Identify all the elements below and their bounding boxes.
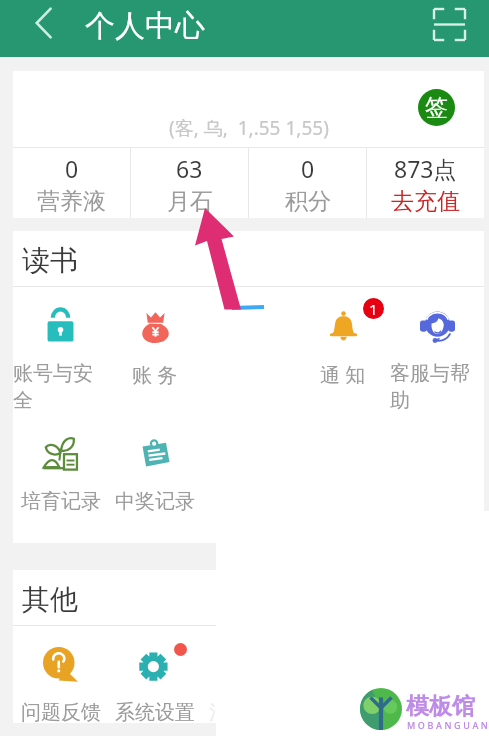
staticText: 积分 <box>285 187 331 216</box>
staticText: 账号与安全 <box>13 361 108 413</box>
button[interactable]: 通 知 <box>296 287 390 415</box>
button[interactable]: 0 <box>249 148 366 218</box>
staticText: 培育记录 <box>21 489 101 514</box>
staticText: 0 <box>65 153 79 184</box>
button[interactable]: 客服与帮助 <box>390 287 484 415</box>
button[interactable]: 系统设置 <box>108 626 202 723</box>
staticText: 问题反馈 <box>21 700 101 723</box>
staticText: 账 务 <box>132 361 178 388</box>
staticText: 模板馆 <box>406 692 475 721</box>
button[interactable]: 培育记录 <box>13 415 108 543</box>
staticText: 读书 <box>22 243 78 278</box>
staticText: 63 <box>176 153 203 184</box>
staticText: 通 知 <box>320 361 366 388</box>
button[interactable]: 账号与安全 <box>13 287 108 415</box>
staticText: 月石 <box>167 187 213 216</box>
button[interactable]: 中奖记录 <box>108 415 202 543</box>
staticText: 其他 <box>22 582 78 617</box>
button[interactable]: Sign in <box>418 89 455 126</box>
button[interactable]: 63 <box>131 148 248 218</box>
staticText: (客, 乌, 1,.55 1,55) <box>169 115 329 141</box>
staticText: 营养液 <box>37 187 106 216</box>
button[interactable]: 账 务 <box>108 287 202 415</box>
staticText: 客服与帮助 <box>390 361 484 413</box>
button[interactable]: 873点 <box>367 148 484 218</box>
staticText: 去充值 <box>391 187 460 216</box>
staticText: 1 <box>369 299 378 319</box>
staticText: 系统设置 <box>115 700 195 723</box>
button[interactable]: Scan <box>427 2 472 47</box>
staticText: 签 <box>425 93 448 122</box>
button[interactable]: 问题反馈 <box>13 626 108 723</box>
staticText: 0 <box>301 153 315 184</box>
staticText: 873点 <box>394 153 457 184</box>
staticText: 中奖记录 <box>115 489 195 514</box>
staticText: MOBANGUAN <box>407 719 489 731</box>
button[interactable]: 0 <box>13 148 130 218</box>
button[interactable]: Back <box>24 4 62 42</box>
staticText: 个人中心 <box>85 7 205 45</box>
